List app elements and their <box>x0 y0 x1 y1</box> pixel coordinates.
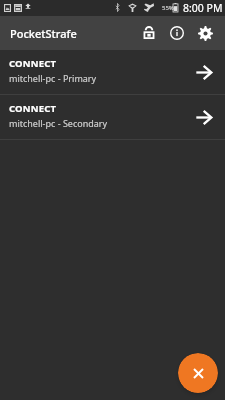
staticText: CONNECT <box>9 102 57 115</box>
button[interactable]: CONNECT <box>0 95 225 139</box>
staticText: 55% <box>162 4 174 12</box>
staticText: PocketStrafe <box>10 26 77 41</box>
staticText: CONNECT <box>9 57 57 70</box>
button[interactable]: Info <box>163 19 191 47</box>
staticText: mitchell-pc - Primary <box>9 72 97 84</box>
button[interactable]: Lock <box>135 19 163 47</box>
button[interactable]: CONNECT <box>0 50 225 94</box>
staticText: 8:00 PM <box>183 1 223 15</box>
staticText: mitchell-pc - Secondary <box>9 117 108 129</box>
button[interactable]: Settings <box>191 19 219 47</box>
button[interactable]: Close <box>178 353 218 393</box>
